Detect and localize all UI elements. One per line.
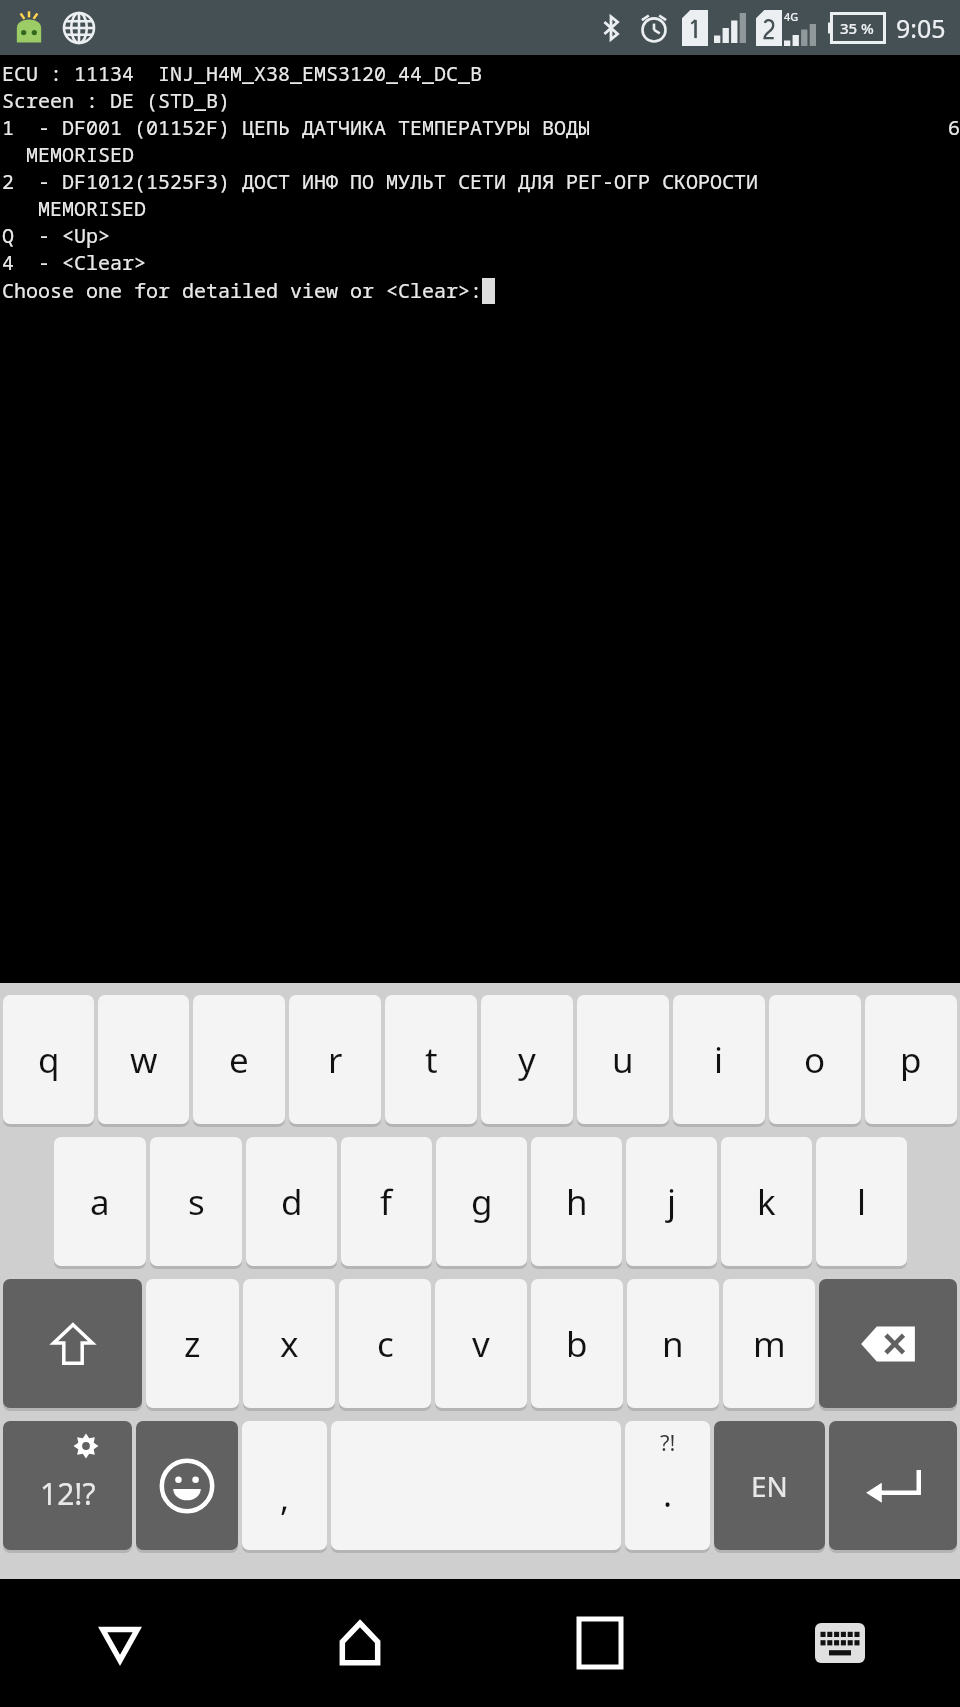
button[interactable]: p: [865, 995, 957, 1124]
staticText: h: [566, 1178, 588, 1226]
staticText: Q - <Up>: [2, 222, 110, 249]
staticText: q: [38, 1036, 60, 1084]
button[interactable]: t: [385, 995, 477, 1124]
button[interactable]: EN: [714, 1421, 825, 1550]
button[interactable]: b: [531, 1279, 623, 1408]
staticText: n: [662, 1320, 684, 1368]
staticText: x: [280, 1320, 299, 1368]
button[interactable]: r: [289, 995, 381, 1124]
staticText: i: [714, 1036, 724, 1084]
staticText: 1 - DF001 (01152F) ЦЕПЬ ДАТЧИКА ТЕМПЕРАТ…: [2, 114, 590, 141]
staticText: k: [757, 1178, 776, 1226]
button[interactable]: 12!?: [3, 1421, 132, 1550]
staticText: Screen : DE (STD_B): [2, 87, 230, 114]
button[interactable]: m: [723, 1279, 815, 1408]
staticText: MEMORISED: [2, 195, 146, 222]
staticText: u: [612, 1036, 634, 1084]
staticText: y: [518, 1036, 536, 1084]
button[interactable]: s: [150, 1137, 242, 1266]
button[interactable]: x: [243, 1279, 335, 1408]
other: Emoji: [136, 1421, 238, 1553]
staticText: Choose one for detailed view or <Clear>:: [2, 277, 482, 304]
button[interactable]: v: [435, 1279, 527, 1408]
staticText: d: [281, 1178, 303, 1226]
staticText: MEMORISED: [2, 141, 134, 168]
staticText: 2 - DF1012(1525F3) ДОСТ ИНФ ПО МУЛЬТ СЕТ…: [2, 168, 758, 195]
staticText: 6: [948, 114, 960, 141]
button[interactable]: y: [481, 995, 573, 1124]
button[interactable]: i: [673, 995, 765, 1124]
button[interactable]: [829, 1421, 957, 1550]
button[interactable]: u: [577, 995, 669, 1124]
staticText: r: [328, 1036, 343, 1084]
staticText: 12!?: [40, 1473, 96, 1514]
staticText: m: [753, 1320, 786, 1368]
staticText: ?!: [660, 1427, 676, 1457]
button[interactable]: Recents: [480, 1579, 720, 1707]
button[interactable]: n: [627, 1279, 719, 1408]
staticText: p: [900, 1036, 922, 1084]
staticText: s: [188, 1178, 205, 1226]
button[interactable]: [819, 1279, 957, 1408]
button[interactable]: q: [3, 995, 94, 1124]
button[interactable]: w: [98, 995, 189, 1124]
button[interactable]: Home: [240, 1579, 480, 1707]
staticText: t: [425, 1036, 438, 1084]
staticText: w: [130, 1036, 158, 1084]
button[interactable]: e: [193, 995, 285, 1124]
other: Enter: [829, 1421, 957, 1553]
button[interactable]: g: [436, 1137, 527, 1266]
staticText: b: [566, 1320, 588, 1368]
button[interactable]: o: [769, 995, 861, 1124]
other: Backspace: [819, 1279, 957, 1411]
button[interactable]: d: [246, 1137, 337, 1266]
staticText: 35 %: [840, 18, 874, 38]
button[interactable]: h: [531, 1137, 622, 1266]
button[interactable]: f: [341, 1137, 432, 1266]
button[interactable]: [136, 1421, 238, 1550]
staticText: f: [380, 1178, 393, 1226]
other: Symbols and settings: [3, 1421, 132, 1553]
button[interactable]: j: [626, 1137, 717, 1266]
staticText: 4G: [784, 9, 799, 24]
staticText: 4 - <Clear>: [2, 249, 146, 276]
staticText: ECU : 11134 INJ_H4M_X38_EMS3120_44_DC_B: [2, 60, 482, 87]
button[interactable]: z: [146, 1279, 239, 1408]
staticText: c: [377, 1320, 394, 1368]
button[interactable]: l: [816, 1137, 907, 1266]
button[interactable]: Switch keyboard: [720, 1579, 960, 1707]
staticText: 9:05: [896, 11, 946, 45]
other: Shift: [3, 1279, 142, 1411]
staticText: l: [857, 1178, 867, 1226]
staticText: ,: [280, 1475, 290, 1521]
button[interactable]: Back: [0, 1579, 240, 1707]
staticText: g: [471, 1178, 493, 1226]
staticText: z: [184, 1320, 201, 1368]
staticText: e: [229, 1036, 249, 1084]
staticText: o: [804, 1036, 826, 1084]
button[interactable]: c: [339, 1279, 431, 1408]
button[interactable]: ?!: [625, 1421, 710, 1550]
other: Space: [331, 1421, 621, 1553]
staticText: v: [472, 1320, 490, 1368]
button[interactable]: ,: [242, 1421, 327, 1550]
staticText: j: [667, 1178, 677, 1226]
button[interactable]: k: [721, 1137, 812, 1266]
staticText: .: [663, 1471, 673, 1517]
button[interactable]: a: [54, 1137, 146, 1266]
staticText: a: [90, 1178, 110, 1226]
button[interactable]: [3, 1279, 142, 1408]
staticText: EN: [751, 1467, 788, 1505]
